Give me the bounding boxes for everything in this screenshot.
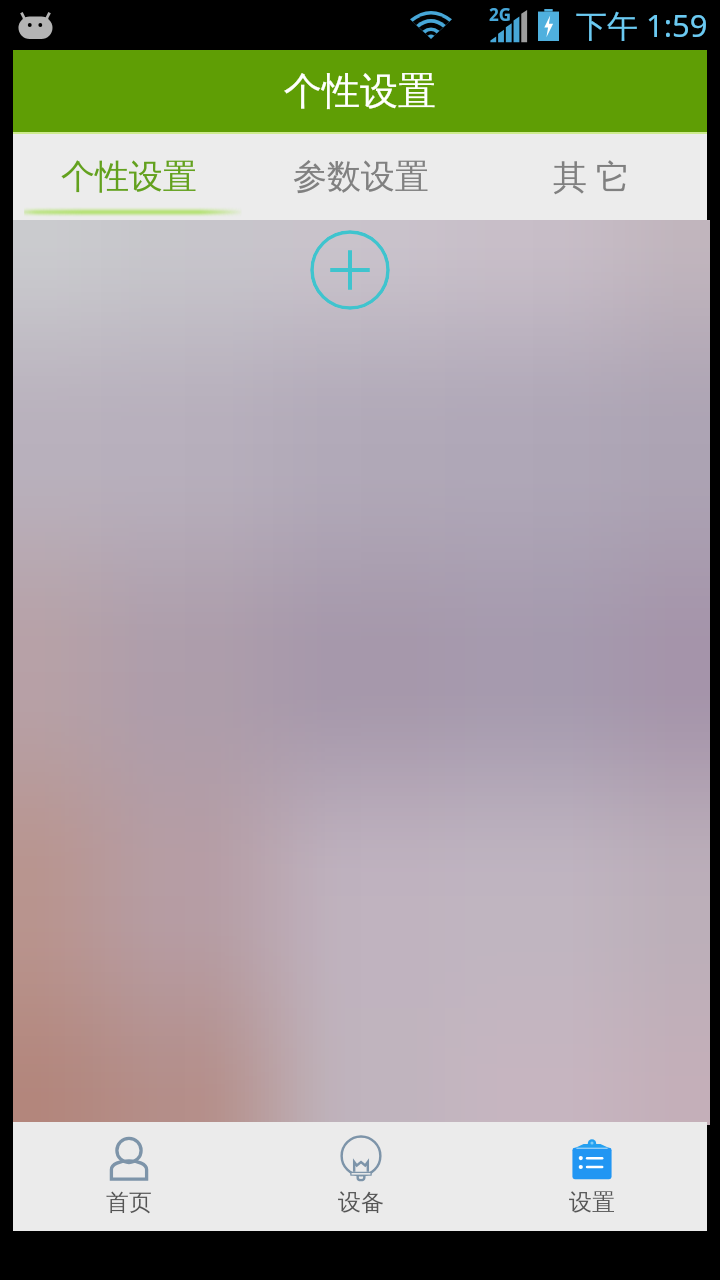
button[interactable]: 其 它 [476, 132, 707, 220]
button[interactable]: 设置 [476, 1122, 707, 1231]
staticText: 下午 1:59 [576, 4, 708, 46]
staticText: 个性设置 [284, 67, 436, 115]
button[interactable]: 设备 [245, 1122, 476, 1231]
button[interactable]: 个性设置 [13, 132, 245, 220]
button[interactable]: Add [310, 230, 390, 310]
button[interactable]: 首页 [13, 1122, 245, 1231]
staticText: 个性设置 [61, 155, 197, 198]
staticText: 参数设置 [293, 155, 429, 198]
staticText: 设备 [338, 1188, 384, 1217]
staticText: 2G [489, 3, 512, 26]
button[interactable]: 参数设置 [245, 132, 476, 220]
staticText: 设置 [569, 1188, 615, 1217]
staticText: 其 它 [553, 153, 630, 199]
staticText: 首页 [106, 1188, 152, 1217]
